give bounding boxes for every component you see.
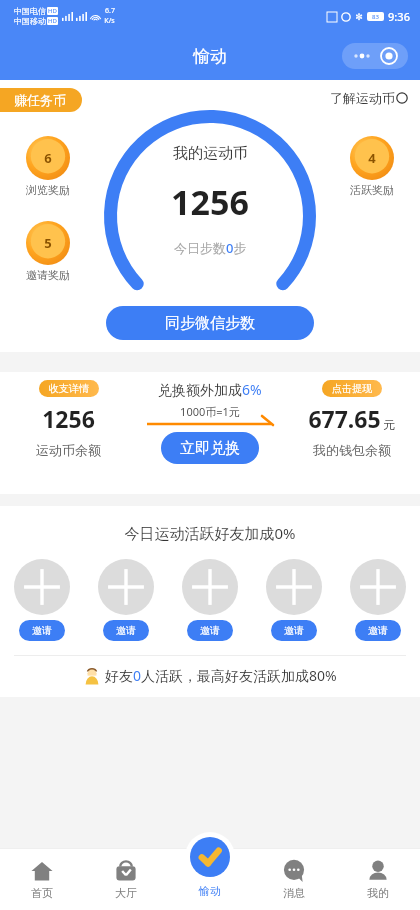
- staticText: 大厅: [115, 886, 137, 900]
- button[interactable]: 大厅: [84, 848, 168, 910]
- staticText: 83: [372, 13, 379, 21]
- other: 大厅: [114, 859, 138, 883]
- staticText: 愉动: [193, 46, 227, 67]
- staticText: 1256: [171, 179, 249, 225]
- other: Add friend: [98, 559, 154, 615]
- staticText: 4: [368, 149, 376, 167]
- other: 我的: [366, 859, 390, 883]
- staticText: 6: [44, 149, 52, 167]
- staticText: 6.7: [105, 6, 115, 16]
- button[interactable]: 邀请: [19, 620, 65, 641]
- staticText: 兑换额外加成6%: [158, 380, 262, 399]
- button[interactable]: More: [342, 43, 408, 69]
- button[interactable]: 消息: [252, 848, 336, 910]
- staticText: 5: [44, 234, 52, 252]
- button[interactable]: 邀请: [187, 620, 233, 641]
- staticText: 邀请: [32, 624, 52, 637]
- staticText: 赚任务币: [14, 92, 66, 108]
- other: Target: [380, 47, 398, 65]
- staticText: 邀请: [200, 624, 220, 637]
- staticText: 1000币=1元: [180, 404, 240, 419]
- button[interactable]: Add friend: [350, 559, 406, 641]
- staticText: 点击提现: [332, 382, 372, 395]
- button[interactable]: 了解运动币: [330, 90, 408, 106]
- staticText: ✻: [355, 12, 363, 22]
- staticText: 浏览奖励: [26, 183, 70, 197]
- staticText: 愉动: [199, 884, 221, 898]
- button[interactable]: 4: [340, 136, 404, 197]
- other: More: [352, 52, 372, 60]
- button[interactable]: 邀请: [103, 620, 149, 641]
- button[interactable]: 6: [16, 136, 80, 197]
- staticText: HD: [48, 7, 57, 15]
- staticText: 今日运动活跃好友加成0%: [124, 523, 296, 543]
- staticText: 首页: [31, 886, 53, 900]
- staticText: 我的: [367, 886, 389, 900]
- staticText: 立即兑换: [180, 439, 240, 458]
- other: 消息: [282, 859, 306, 883]
- staticText: 邀请: [284, 624, 304, 637]
- button[interactable]: 立即兑换: [161, 432, 259, 464]
- staticText: 中国电信: [14, 6, 46, 16]
- staticText: 收支详情: [49, 382, 89, 395]
- button[interactable]: 同步微信步数: [106, 306, 314, 340]
- button[interactable]: Add friend: [266, 559, 322, 641]
- staticText: 邀请: [368, 624, 388, 637]
- other: Add friend: [266, 559, 322, 615]
- button[interactable]: Add friend: [182, 559, 238, 641]
- button[interactable]: 点击提现: [322, 380, 382, 397]
- staticText: 邀请: [116, 624, 136, 637]
- staticText: 消息: [283, 886, 305, 900]
- other: 首页: [30, 859, 54, 883]
- staticText: 同步微信步数: [165, 314, 255, 333]
- staticText: K/s: [104, 16, 115, 26]
- button[interactable]: 邀请: [271, 620, 317, 641]
- staticText: 邀请奖励: [26, 268, 70, 282]
- staticText: 9:36: [388, 9, 410, 24]
- other: Add friend: [182, 559, 238, 615]
- button[interactable]: 收支详情: [39, 380, 99, 397]
- button[interactable]: Add friend: [14, 559, 70, 641]
- other: Add friend: [14, 559, 70, 615]
- button[interactable]: 赚任务币: [0, 88, 82, 112]
- button[interactable]: 5: [16, 221, 80, 282]
- other: 愉动: [190, 837, 230, 877]
- staticText: 中国移动: [14, 16, 46, 26]
- staticText: 677.65: [308, 403, 381, 434]
- staticText: 了解运动币: [330, 90, 395, 106]
- staticText: 今日步数0步: [174, 239, 247, 257]
- button[interactable]: 我的: [336, 848, 420, 910]
- staticText: HD: [48, 17, 57, 25]
- staticText: 元: [383, 417, 395, 432]
- other: Add friend: [350, 559, 406, 615]
- staticText: 好友0人活跃，最高好友活跃加成80%: [105, 666, 337, 685]
- button[interactable]: 邀请: [355, 620, 401, 641]
- staticText: 我的运动币: [173, 144, 248, 163]
- staticText: 活跃奖励: [350, 183, 394, 197]
- button[interactable]: 愉动: [185, 832, 235, 898]
- staticText: 我的钱包余额: [313, 442, 391, 458]
- staticText: 1256: [42, 403, 95, 434]
- button[interactable]: Add friend: [98, 559, 154, 641]
- button[interactable]: 首页: [0, 848, 84, 910]
- staticText: 运动币余额: [36, 442, 101, 458]
